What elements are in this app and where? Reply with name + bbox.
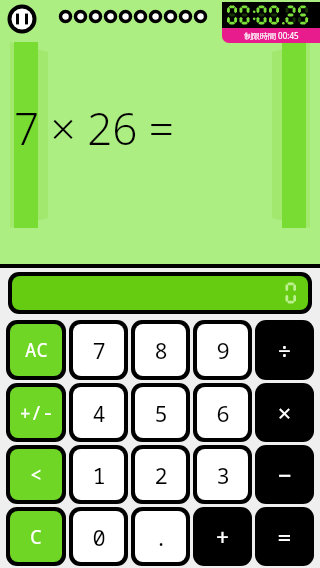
staticText: 7 × 26 = xyxy=(14,98,174,158)
button[interactable]: 0 xyxy=(73,511,124,562)
button[interactable]: 9 xyxy=(197,324,248,376)
button[interactable]: 3 xyxy=(197,449,248,500)
staticText: < xyxy=(30,461,42,488)
button[interactable]: 4 xyxy=(73,387,124,438)
button[interactable]: 1 xyxy=(73,449,124,500)
staticText: 制限時間 00:45 xyxy=(244,30,299,41)
button[interactable]: Equals xyxy=(259,511,310,562)
button[interactable]: Multiply xyxy=(259,387,310,438)
button[interactable]: 5 xyxy=(135,387,186,438)
button[interactable]: 7 xyxy=(73,324,124,376)
staticText: . xyxy=(154,522,168,552)
staticText: 4 xyxy=(92,398,106,428)
button[interactable]: Divide xyxy=(259,324,310,376)
staticText: 0 xyxy=(92,522,106,552)
staticText: 2 xyxy=(154,460,168,490)
staticText: × xyxy=(277,396,292,429)
button[interactable]: Add xyxy=(197,511,248,562)
staticText: ÷ xyxy=(277,334,292,367)
button[interactable]: Backspace xyxy=(10,449,62,500)
button[interactable]: 6 xyxy=(197,387,248,438)
staticText: 1 xyxy=(92,460,106,490)
button[interactable]: +/- xyxy=(10,387,62,438)
staticText: 6 xyxy=(216,398,230,428)
button[interactable]: Subtract xyxy=(259,449,310,500)
staticText: + xyxy=(215,520,230,553)
staticText: 9 xyxy=(216,335,230,365)
staticText: +/- xyxy=(19,400,54,426)
staticText: 8 xyxy=(154,335,168,365)
staticText: − xyxy=(277,458,292,491)
button[interactable]: 8 xyxy=(135,324,186,376)
button[interactable]: . xyxy=(135,511,186,562)
staticText: 5 xyxy=(154,398,168,428)
staticText: C xyxy=(30,523,42,550)
button[interactable]: Pause xyxy=(7,4,37,34)
staticText: 3 xyxy=(216,460,230,490)
staticText: AC xyxy=(25,337,48,363)
button[interactable]: 2 xyxy=(135,449,186,500)
staticText: = xyxy=(277,520,292,553)
staticText: 7 xyxy=(92,335,106,365)
button[interactable]: AC xyxy=(10,324,62,376)
button[interactable]: C xyxy=(10,511,62,562)
